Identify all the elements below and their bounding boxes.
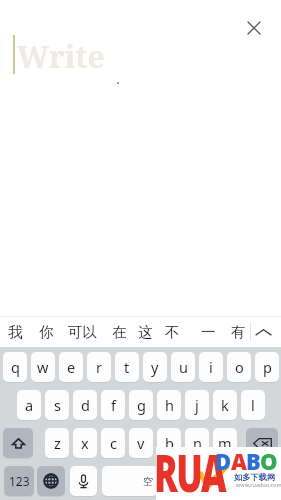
staticText: 换行: [225, 474, 247, 488]
button[interactable]: a: [17, 390, 41, 420]
staticText: 123: [9, 473, 30, 489]
staticText: 不: [165, 323, 180, 341]
staticText: 如多下载网: [234, 472, 275, 482]
button[interactable]: u: [171, 352, 195, 382]
button[interactable]: q: [3, 352, 27, 382]
staticText: Write: [17, 36, 105, 77]
staticText: o: [235, 357, 244, 377]
button[interactable]: p: [255, 352, 279, 382]
button[interactable]: g: [129, 390, 153, 420]
button[interactable]: 在: [109, 317, 129, 347]
staticText: j: [195, 395, 199, 415]
staticText: u: [179, 357, 188, 377]
button[interactable]: e: [59, 352, 83, 382]
staticText: c: [110, 433, 117, 453]
staticText: D: [215, 446, 231, 476]
staticText: 一: [201, 323, 216, 341]
button[interactable]: m: [213, 428, 237, 458]
button[interactable]: 。: [162, 466, 190, 496]
button[interactable]: Close: [241, 15, 267, 41]
staticText: h: [165, 395, 174, 415]
staticText: d: [81, 395, 90, 415]
button[interactable]: 空: [102, 466, 158, 496]
staticText: RUA: [154, 436, 225, 500]
staticText: p: [263, 357, 272, 377]
button[interactable]: h: [157, 390, 181, 420]
button[interactable]: 你: [36, 317, 56, 347]
button[interactable]: c: [101, 428, 125, 458]
staticText: www.ruaduo.com: [236, 481, 281, 488]
staticText: 有: [231, 323, 246, 341]
button[interactable]: 我: [5, 317, 25, 347]
staticText: s: [54, 395, 61, 415]
button[interactable]: r: [87, 352, 111, 382]
staticText: O: [260, 446, 277, 476]
staticText: b: [165, 433, 174, 453]
button[interactable]: l: [241, 390, 265, 420]
button[interactable]: Backspace: [246, 428, 278, 458]
staticText: 这: [138, 323, 153, 341]
button[interactable]: z: [45, 428, 69, 458]
button[interactable]: k: [213, 390, 237, 420]
button[interactable]: o: [227, 352, 251, 382]
staticText: y: [151, 357, 159, 377]
staticText: f: [111, 395, 116, 415]
staticText: w: [37, 357, 49, 377]
button[interactable]: 不: [162, 317, 182, 347]
staticText: l: [251, 395, 255, 415]
staticText: 。: [170, 474, 182, 489]
button[interactable]: 可以: [66, 317, 98, 347]
button[interactable]: Shift: [3, 428, 33, 458]
staticText: r: [96, 357, 102, 377]
staticText: n: [193, 433, 202, 453]
staticText: k: [221, 395, 229, 415]
button[interactable]: v: [129, 428, 153, 458]
button[interactable]: Switch language: [37, 466, 65, 496]
staticText: 空: [143, 475, 153, 488]
button[interactable]: 123: [4, 466, 34, 496]
button[interactable]: y: [143, 352, 167, 382]
button[interactable]: i: [199, 352, 223, 382]
staticText: z: [54, 433, 61, 453]
staticText: 我: [8, 323, 23, 341]
button[interactable]: Voice input: [70, 466, 97, 496]
staticText: e: [67, 357, 76, 377]
button[interactable]: 这: [135, 317, 155, 347]
button[interactable]: b: [157, 428, 181, 458]
staticText: 在: [112, 323, 127, 341]
button[interactable]: f: [101, 390, 125, 420]
staticText: q: [11, 357, 20, 377]
staticText: x: [81, 433, 89, 453]
button[interactable]: Expand suggestions: [251, 317, 275, 347]
button[interactable]: s: [45, 390, 69, 420]
staticText: g: [137, 395, 146, 415]
button[interactable]: j: [185, 390, 209, 420]
button[interactable]: t: [115, 352, 139, 382]
button[interactable]: 有: [228, 317, 248, 347]
staticText: A: [231, 446, 246, 476]
button[interactable]: w: [31, 352, 55, 382]
staticText: a: [25, 395, 34, 415]
staticText: m: [218, 433, 232, 453]
button[interactable]: n: [185, 428, 209, 458]
staticText: i: [209, 357, 213, 377]
staticText: 可以: [68, 323, 97, 341]
button[interactable]: d: [73, 390, 97, 420]
staticText: B: [246, 446, 260, 476]
staticText: t: [124, 357, 130, 377]
button[interactable]: Enter: [194, 466, 278, 496]
staticText: v: [137, 433, 145, 453]
button[interactable]: 一: [198, 317, 218, 347]
staticText: 你: [39, 323, 54, 341]
button[interactable]: x: [73, 428, 97, 458]
